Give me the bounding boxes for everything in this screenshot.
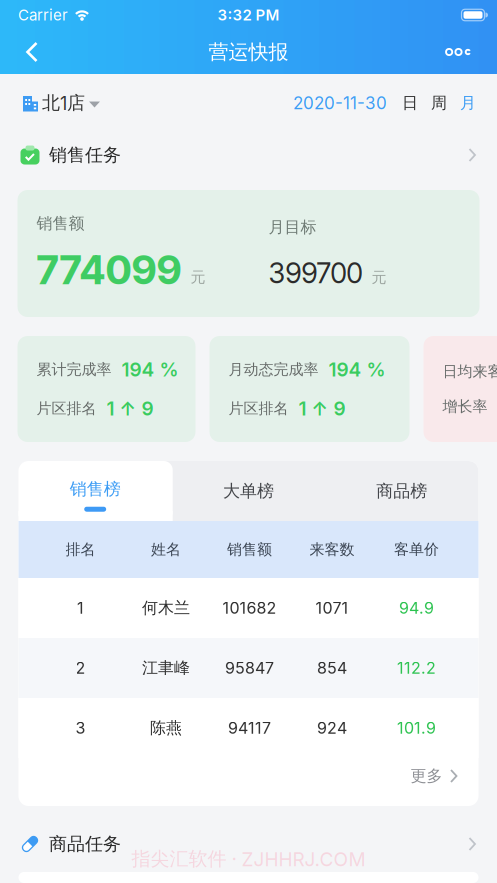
staticText: 194 % [121, 358, 178, 381]
staticText: 95847 [225, 658, 274, 678]
button[interactable]: More [446, 37, 497, 67]
staticText: 来客数 [309, 540, 354, 559]
staticText: 姓名 [151, 540, 181, 559]
staticText: 101682 [222, 598, 276, 618]
staticText: 924 [317, 718, 347, 738]
staticText: 销售额 [227, 540, 272, 559]
button[interactable]: 销售任务 [0, 132, 497, 178]
button[interactable]: 月 [447, 93, 476, 113]
staticText: 94117 [228, 718, 271, 738]
staticText: 片区排名 [36, 399, 96, 418]
button[interactable]: 商品榜 [325, 461, 478, 521]
staticText: 日 [402, 93, 418, 113]
staticText: 月 [460, 93, 476, 113]
button[interactable]: 北1店 [22, 92, 100, 114]
staticText: 1 [77, 598, 84, 618]
staticText: 累计完成率 [36, 360, 111, 379]
staticText: 1 ↑ 9 [298, 397, 345, 420]
staticText: 3 [75, 718, 85, 738]
staticText: 194 % [328, 358, 385, 381]
staticText: 元 [190, 268, 205, 287]
staticText: 854 [317, 658, 347, 678]
staticText: 101.9 [397, 718, 436, 738]
button[interactable]: 大单榜 [172, 461, 325, 521]
staticText: 1 ↑ 9 [106, 397, 153, 420]
staticText: 销售任务 [49, 144, 121, 166]
staticText: 元 [371, 268, 386, 287]
staticText: 销售榜 [70, 478, 121, 500]
staticText: 月目标 [268, 217, 316, 237]
staticText: 3:32 PM [217, 6, 279, 24]
staticText: 2 [75, 658, 85, 678]
button[interactable]: 日 [387, 93, 418, 113]
staticText: 销售额 [36, 213, 84, 233]
staticText: 陈燕 [150, 718, 182, 738]
staticText: 94.9 [399, 598, 434, 618]
staticText: 周 [431, 93, 447, 113]
staticText: 何木兰 [142, 598, 190, 618]
staticText: 399700 [268, 256, 362, 290]
staticText: 商品任务 [49, 833, 121, 855]
staticText: 月动态完成率 [228, 360, 318, 379]
staticText: 大单榜 [223, 480, 274, 502]
staticText: 2020-11-30 [293, 93, 387, 113]
button[interactable]: 2020-11-30 [293, 93, 387, 113]
staticText: 营运快报 [208, 39, 288, 65]
staticText: 江聿峰 [142, 658, 190, 678]
staticText: 排名 [65, 540, 95, 559]
staticText: 北1店 [42, 92, 85, 114]
staticText: 112.2 [397, 658, 436, 678]
staticText: 增长率 [442, 397, 487, 416]
button[interactable]: 商品任务 [0, 816, 497, 872]
button[interactable]: 周 [418, 93, 447, 113]
staticText: 客单价 [394, 540, 439, 559]
staticText: 774099 [36, 245, 181, 294]
button[interactable]: 更多 [410, 766, 478, 798]
button[interactable]: 销售榜 [18, 461, 172, 521]
staticText: 指尖汇软件 · ZJHHRJ.COM [131, 847, 365, 871]
staticText: Carrier [18, 6, 68, 24]
staticText: 更多 [410, 766, 442, 786]
staticText: 日均来客数 [442, 362, 497, 381]
staticText: 商品榜 [376, 480, 427, 502]
staticText: 1071 [315, 598, 348, 618]
staticText: 片区排名 [228, 399, 288, 418]
button[interactable]: Back [0, 31, 38, 72]
